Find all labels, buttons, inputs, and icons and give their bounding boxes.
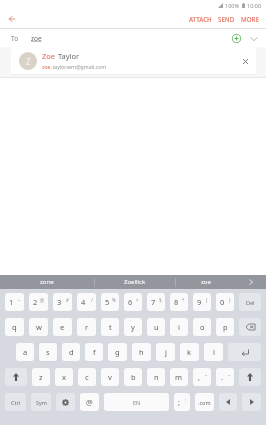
- button[interactable]: w: [29, 318, 48, 336]
- button[interactable]: v: [101, 368, 119, 386]
- staticText: 9: [197, 297, 202, 307]
- button[interactable]: r: [77, 318, 96, 336]
- staticText: @: [40, 297, 45, 303]
- button[interactable]: Shift: [5, 368, 27, 386]
- button[interactable]: q: [5, 318, 24, 336]
- button[interactable]: b: [124, 368, 142, 386]
- staticText: a: [23, 347, 28, 357]
- staticText: *: [182, 297, 185, 303]
- button[interactable]: ,: [193, 368, 211, 386]
- button[interactable]: o: [193, 318, 211, 336]
- staticText: x: [62, 372, 66, 382]
- button[interactable]: t: [101, 318, 119, 336]
- button[interactable]: Expand recipients: [247, 32, 260, 45]
- staticText: ,: [198, 372, 201, 382]
- button[interactable]: y: [124, 318, 142, 336]
- button[interactable]: l: [204, 343, 223, 361]
- button[interactable]: 8: [170, 293, 188, 311]
- button[interactable]: 6: [124, 293, 142, 311]
- button[interactable]: 9: [193, 293, 211, 311]
- staticText: z: [39, 372, 43, 382]
- button[interactable]: c: [78, 368, 96, 386]
- button[interactable]: i: [170, 318, 188, 336]
- button[interactable]: f: [85, 343, 103, 361]
- staticText: Taylor: [56, 51, 80, 61]
- button[interactable]: z: [32, 368, 50, 386]
- button[interactable]: Sym: [31, 393, 51, 411]
- staticText: l: [213, 347, 215, 357]
- staticText: n: [154, 372, 159, 382]
- staticText: t: [109, 322, 112, 332]
- button[interactable]: Move left: [219, 393, 237, 411]
- button[interactable]: 4: [77, 293, 96, 311]
- staticText: Zoellick: [124, 278, 146, 286]
- staticText: q: [12, 322, 17, 332]
- staticText: 4: [81, 297, 86, 307]
- button[interactable]: ;: [174, 393, 190, 411]
- button[interactable]: Enter: [228, 343, 261, 361]
- button[interactable]: .: [216, 368, 234, 386]
- button[interactable]: 7: [147, 293, 165, 311]
- button[interactable]: Add recipient: [230, 32, 243, 45]
- staticText: s: [46, 347, 50, 357]
- staticText: .: [221, 372, 224, 382]
- button[interactable]: Backspace: [239, 318, 261, 336]
- staticText: Sym: [36, 399, 47, 406]
- button[interactable]: EN: [104, 393, 169, 411]
- button[interactable]: Z: [11, 47, 256, 74]
- staticText: h: [139, 347, 144, 357]
- staticText: Zoe: [42, 51, 56, 61]
- staticText: ): [229, 297, 231, 303]
- button[interactable]: zoe: [176, 275, 236, 289]
- button[interactable]: x: [55, 368, 73, 386]
- staticText: –: [205, 372, 208, 378]
- button[interactable]: 5: [101, 293, 119, 311]
- button[interactable]: g: [108, 343, 127, 361]
- staticText: 7: [151, 297, 156, 307]
- staticText: u: [154, 322, 159, 332]
- button[interactable]: s: [39, 343, 57, 361]
- staticText: EN: [133, 399, 141, 406]
- button[interactable]: MORE: [238, 13, 262, 25]
- button[interactable]: n: [147, 368, 165, 386]
- button[interactable]: k: [180, 343, 199, 361]
- staticText: c: [85, 372, 89, 382]
- button[interactable]: Zoellick: [95, 275, 175, 289]
- staticText: MORE: [241, 15, 259, 23]
- button[interactable]: u: [147, 318, 165, 336]
- button[interactable]: d: [62, 343, 80, 361]
- button[interactable]: More suggestions: [236, 275, 266, 289]
- staticText: e: [60, 322, 65, 332]
- staticText: –: [228, 372, 231, 378]
- button[interactable]: Dismiss suggestion: [238, 54, 252, 68]
- staticText: Z: [26, 56, 31, 67]
- button[interactable]: 1: [5, 293, 24, 311]
- staticText: .com: [198, 399, 211, 406]
- button[interactable]: m: [170, 368, 188, 386]
- button[interactable]: SEND: [215, 13, 238, 25]
- button[interactable]: a: [16, 343, 34, 361]
- button[interactable]: Move right: [242, 393, 261, 411]
- button[interactable]: Keyboard settings: [56, 393, 75, 411]
- button[interactable]: p: [216, 318, 234, 336]
- button[interactable]: zone: [0, 275, 94, 289]
- button[interactable]: ATTACH: [186, 13, 215, 25]
- button[interactable]: j: [156, 343, 175, 361]
- button[interactable]: .com: [195, 393, 214, 411]
- button[interactable]: Del: [239, 293, 261, 311]
- button[interactable]: @: [80, 393, 99, 411]
- staticText: /: [91, 297, 93, 303]
- staticText: b: [131, 372, 136, 382]
- button[interactable]: Shift: [239, 368, 261, 386]
- button[interactable]: e: [53, 318, 72, 336]
- staticText: 6: [128, 297, 133, 307]
- staticText: g: [115, 347, 120, 357]
- button[interactable]: 0: [216, 293, 234, 311]
- button[interactable]: 2: [29, 293, 48, 311]
- staticText: zone: [40, 278, 54, 286]
- button[interactable]: h: [132, 343, 151, 361]
- staticText: m: [175, 372, 183, 382]
- button[interactable]: Back: [6, 13, 18, 25]
- button[interactable]: Ctrl: [5, 393, 26, 411]
- button[interactable]: 3: [53, 293, 72, 311]
